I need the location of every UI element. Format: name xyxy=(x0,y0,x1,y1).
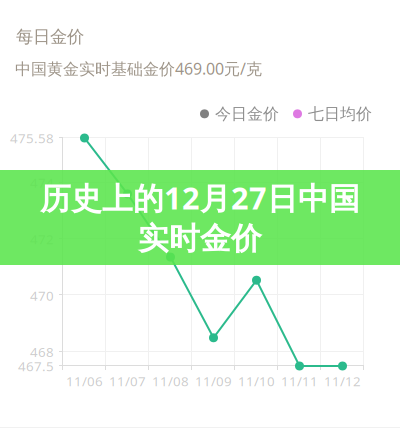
staticText: 11/07 xyxy=(109,372,146,390)
staticText: 11/11 xyxy=(281,372,318,390)
staticText: 467.5 xyxy=(18,357,54,375)
staticText: 11/12 xyxy=(324,372,361,390)
staticText: 今日金价 xyxy=(215,104,279,124)
staticText: 475.58 xyxy=(10,129,54,147)
staticText: 11/08 xyxy=(152,372,189,390)
staticText: 历史上的12月27日中国 xyxy=(40,177,360,218)
staticText: 11/09 xyxy=(195,372,232,390)
staticText: 每日金价 xyxy=(16,26,84,47)
staticText: 468 xyxy=(30,343,54,361)
staticText: 11/06 xyxy=(66,372,103,390)
staticText: 11/10 xyxy=(238,372,275,390)
staticText: 470 xyxy=(30,287,54,304)
staticText: 实时金价 xyxy=(138,220,262,258)
staticText: 中国黄金实时基础金价469.00元/克 xyxy=(15,58,262,79)
staticText: 474 xyxy=(30,174,54,191)
staticText: 七日均价 xyxy=(308,104,372,124)
